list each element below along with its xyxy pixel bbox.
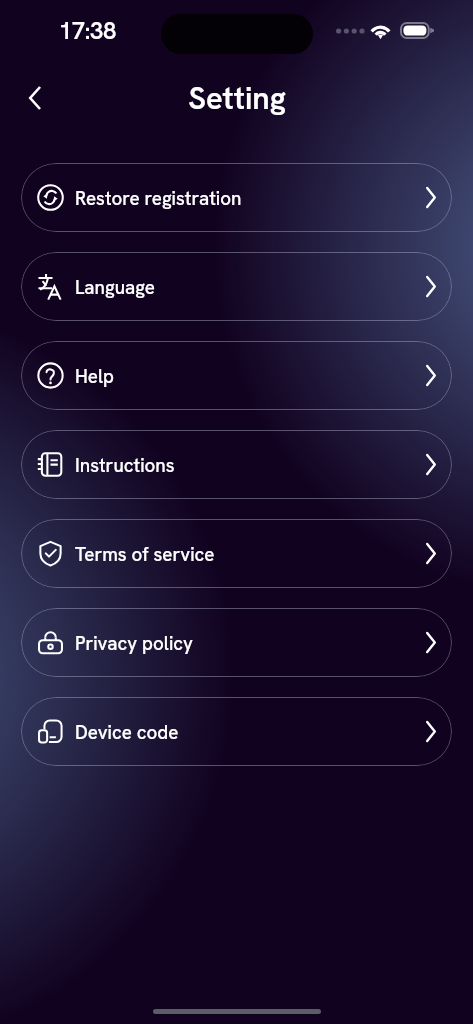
button[interactable]: Restore registration bbox=[21, 163, 452, 232]
button[interactable]: Language bbox=[21, 252, 452, 321]
staticText: Setting bbox=[188, 78, 286, 118]
staticText: 17:38 bbox=[59, 16, 117, 46]
staticText: Instructions bbox=[75, 453, 175, 477]
button[interactable]: Back bbox=[12, 75, 58, 121]
staticText: Terms of service bbox=[75, 542, 215, 566]
button[interactable]: Terms of service bbox=[21, 519, 452, 588]
button[interactable]: Help bbox=[21, 341, 452, 410]
staticText: Language bbox=[75, 275, 155, 299]
button[interactable]: Instructions bbox=[21, 430, 452, 499]
staticText: Help bbox=[75, 364, 115, 388]
button[interactable]: Device code bbox=[21, 697, 452, 766]
button[interactable]: Privacy policy bbox=[21, 608, 452, 677]
staticText: Restore registration bbox=[75, 186, 242, 210]
staticText: Privacy policy bbox=[75, 631, 193, 655]
staticText: Device code bbox=[75, 720, 179, 744]
